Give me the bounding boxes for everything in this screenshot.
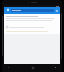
button[interactable] <box>11 9 54 12</box>
button[interactable] <box>4 14 60 34</box>
button[interactable]: Back <box>7 66 10 69</box>
button[interactable]: Search <box>55 9 58 12</box>
button[interactable]: Recent apps <box>54 66 57 69</box>
button[interactable]: Menu <box>6 8 10 12</box>
button[interactable]: Home <box>31 66 34 69</box>
button[interactable]: Menu <box>4 7 60 13</box>
